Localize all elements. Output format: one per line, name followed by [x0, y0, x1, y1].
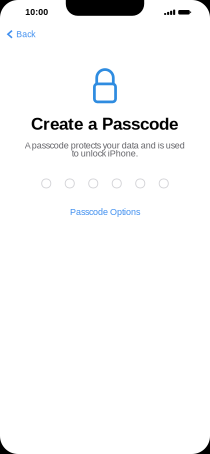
button[interactable]: Back	[0, 26, 42, 46]
staticText: A passcode protects your data and is use…	[24, 141, 184, 157]
button[interactable]: Passcode Options	[0, 203, 210, 221]
staticText: Back	[16, 29, 35, 39]
staticText: 10:00	[25, 7, 48, 17]
staticText: Create a Passcode	[31, 114, 178, 133]
staticText: Passcode Options	[70, 207, 140, 217]
